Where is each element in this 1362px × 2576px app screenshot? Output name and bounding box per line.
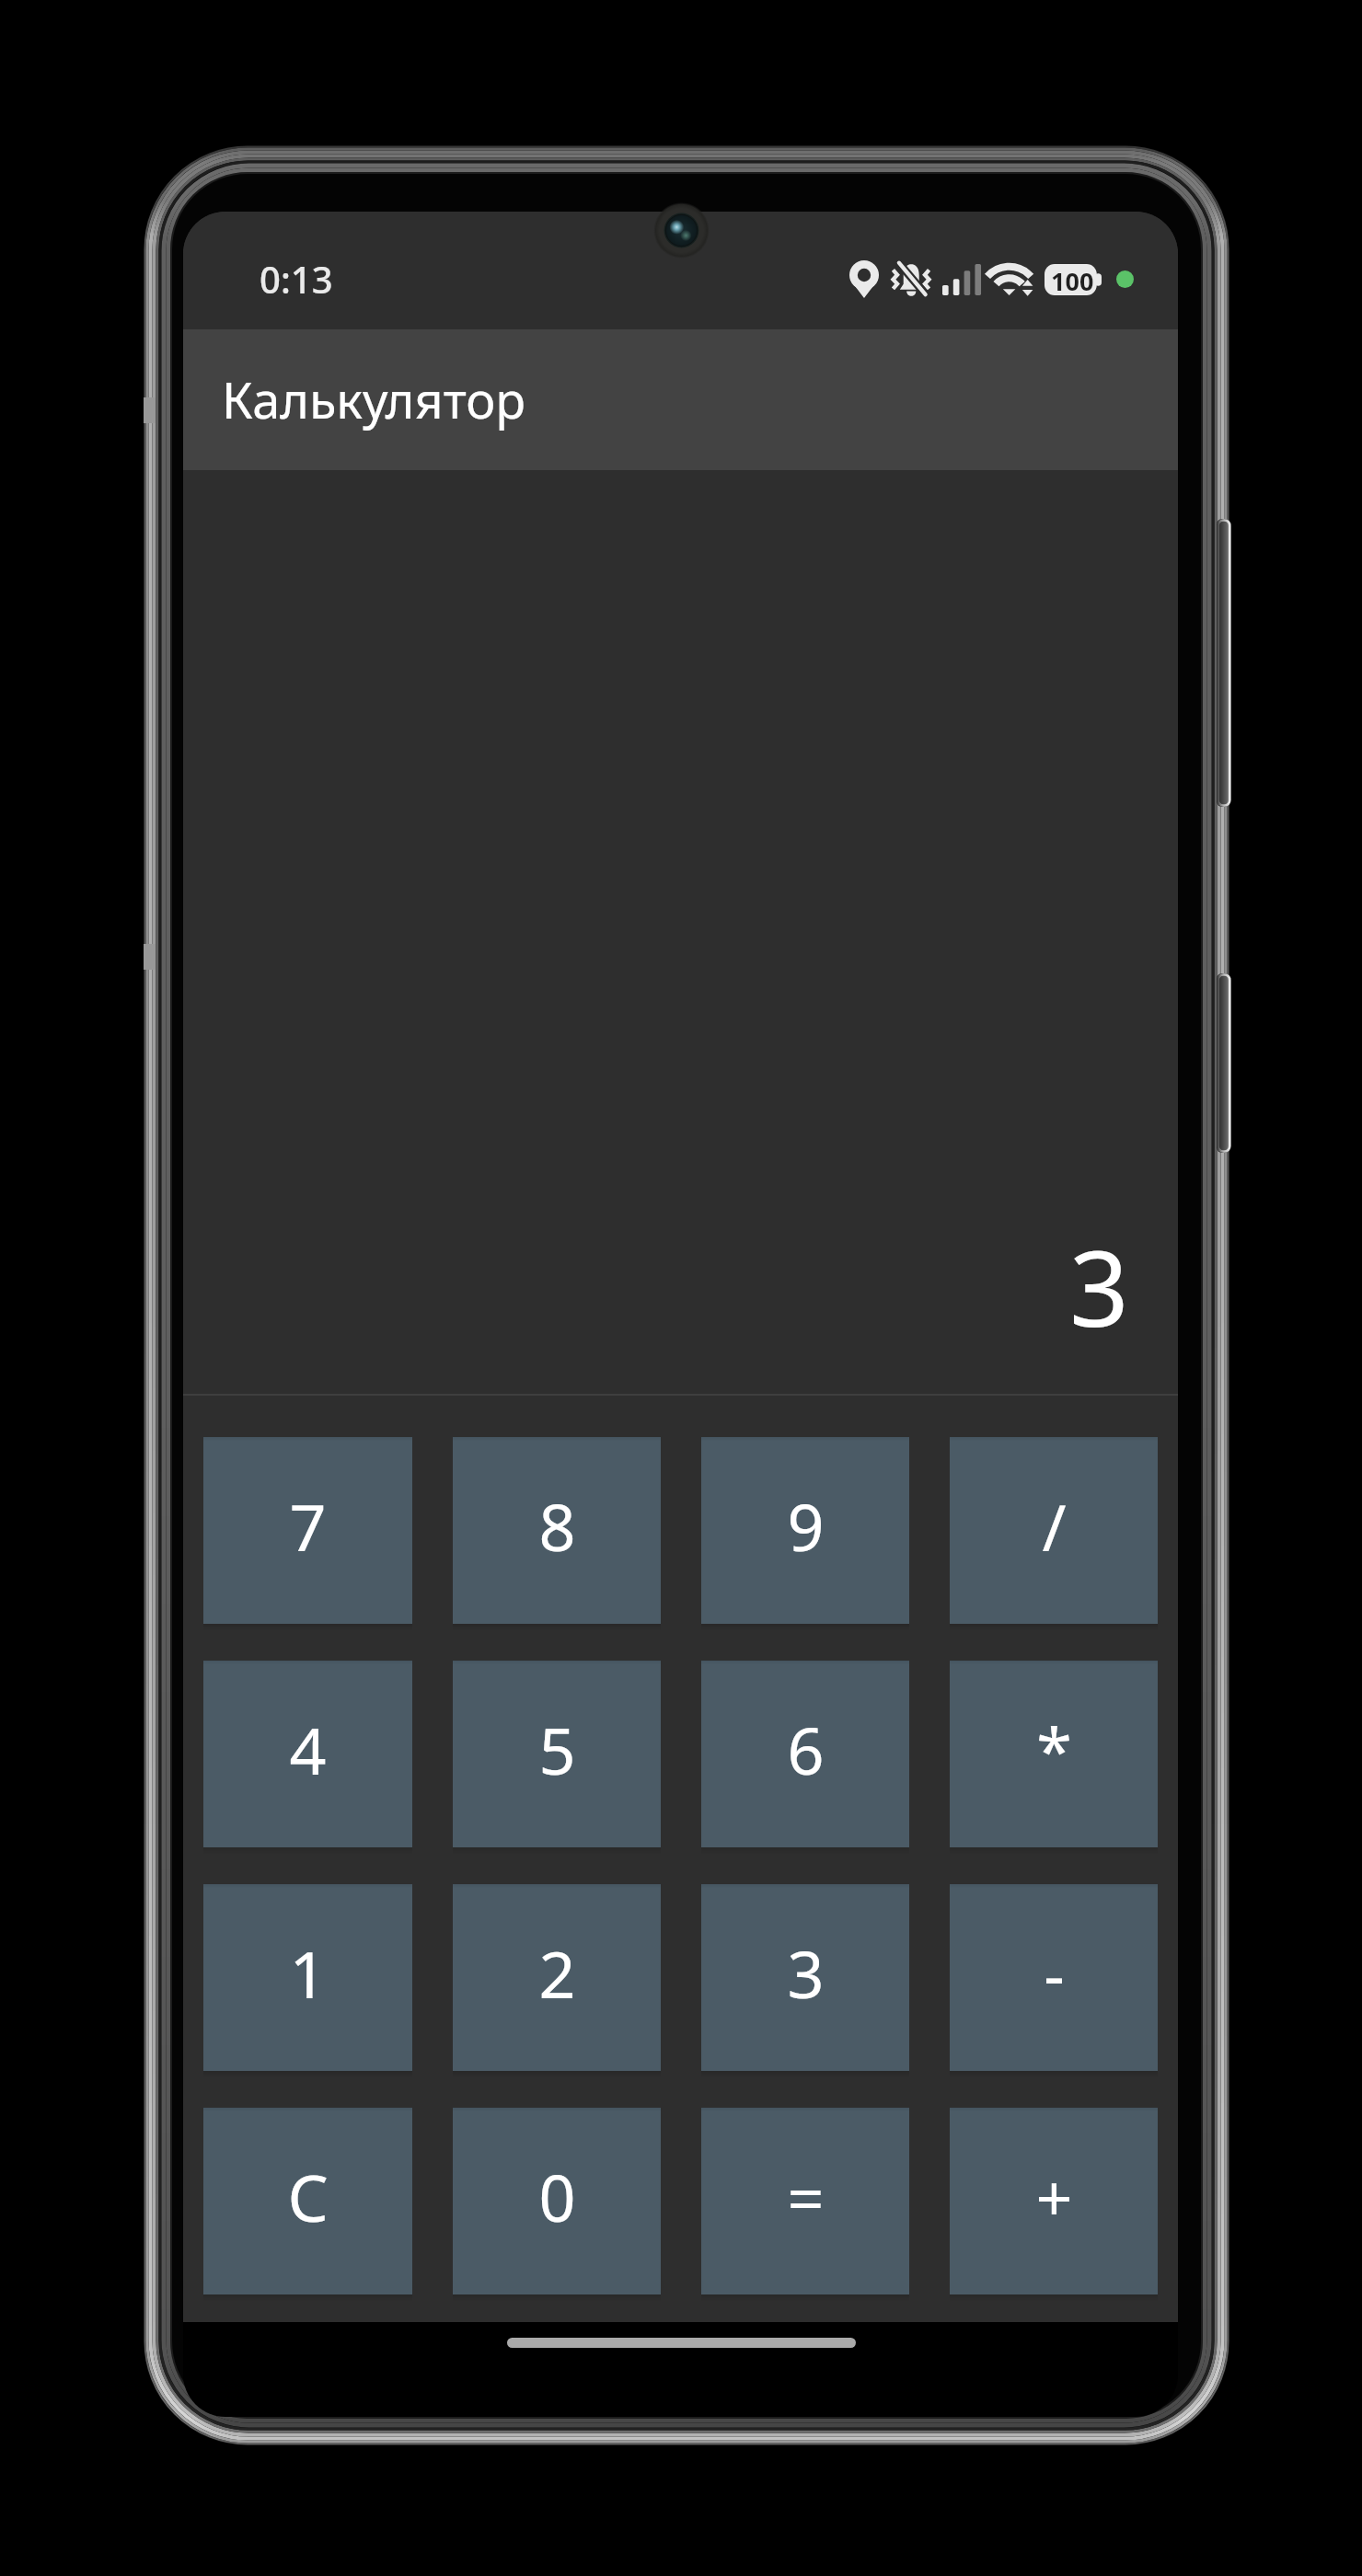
button[interactable]: * <box>950 1661 1158 1847</box>
button[interactable]: + <box>950 2108 1158 2294</box>
button[interactable]: 0 <box>453 2108 661 2294</box>
button[interactable]: 4 <box>203 1661 412 1847</box>
staticText: + <box>1035 2153 1073 2240</box>
button[interactable]: 7 <box>203 1437 412 1624</box>
staticText: 6 <box>787 1706 825 1793</box>
other: Ringer muted, vibrate off <box>890 260 932 298</box>
staticText: 0 <box>538 2153 576 2240</box>
staticText: Калькулятор <box>222 365 526 433</box>
staticText: 3 <box>1069 1215 1129 1357</box>
button[interactable]: 8 <box>453 1437 661 1624</box>
staticText: 9 <box>787 1482 825 1570</box>
button[interactable]: = <box>701 2108 909 2294</box>
button[interactable]: 5 <box>453 1661 661 1847</box>
button[interactable]: 9 <box>701 1437 909 1624</box>
button[interactable]: - <box>950 1884 1158 2071</box>
button[interactable]: 3 <box>701 1884 909 2071</box>
staticText: 5 <box>538 1706 576 1793</box>
staticText: 1 <box>289 1929 327 2017</box>
other: Battery 100 percent <box>1045 264 1102 295</box>
staticText: 100 <box>1051 264 1094 295</box>
button[interactable]: 6 <box>701 1661 909 1847</box>
button[interactable]: / <box>950 1437 1158 1624</box>
button[interactable]: Калькулятор <box>183 329 1178 470</box>
staticText: 8 <box>538 1482 576 1570</box>
button[interactable]: C <box>203 2108 412 2294</box>
button[interactable]: 2 <box>453 1884 661 2071</box>
staticText: / <box>1042 1482 1067 1570</box>
other: Wi-Fi connected <box>993 264 1033 295</box>
staticText: * <box>1036 1706 1072 1793</box>
staticText: = <box>787 2153 825 2240</box>
staticText: 4 <box>289 1706 327 1793</box>
staticText: 3 <box>787 1929 825 2017</box>
staticText: 2 <box>538 1929 576 2017</box>
staticText: - <box>1044 1929 1065 2017</box>
staticText: 7 <box>289 1482 327 1570</box>
other: Location <box>849 260 879 298</box>
other: Mobile signal <box>942 264 981 295</box>
staticText: 0:13 <box>260 254 333 304</box>
staticText: C <box>287 2153 329 2240</box>
button[interactable]: 1 <box>203 1884 412 2071</box>
